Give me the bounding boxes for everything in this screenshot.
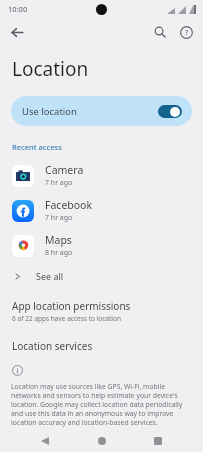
staticText: Location (12, 56, 89, 82)
staticText: Location may use sources like GPS, Wi-Fi… (11, 382, 192, 427)
button[interactable]: App location permissions (0, 297, 203, 325)
staticText: Recent access (12, 142, 62, 152)
staticText: App location permissions (12, 299, 131, 313)
staticText: 7 hr ago (45, 213, 73, 223)
button[interactable]: Maps (0, 228, 203, 263)
staticText: Camera (45, 163, 84, 177)
button[interactable]: Search (147, 19, 173, 45)
staticText: ? (185, 28, 189, 38)
button[interactable]: Back (4, 19, 30, 45)
staticText: 8 hr ago (45, 248, 73, 258)
staticText: Maps (45, 233, 72, 247)
button[interactable]: Use location (11, 96, 192, 126)
button[interactable]: Recent apps (146, 430, 170, 452)
staticText: Use location (22, 105, 77, 118)
staticText: See all (36, 270, 64, 282)
button[interactable]: Camera (0, 158, 203, 193)
button[interactable]: Back (33, 430, 57, 452)
staticText: Facebook (45, 198, 93, 212)
button[interactable]: Home (90, 430, 114, 452)
button[interactable]: See all (0, 265, 203, 287)
button[interactable]: Location services (0, 337, 203, 355)
staticText: 10:00 (8, 4, 28, 14)
staticText: 6 of 22 apps have access to location (12, 314, 121, 323)
staticText: 7 hr ago (45, 178, 73, 188)
button[interactable]: Facebook (0, 193, 203, 228)
staticText: Location services (12, 339, 93, 353)
button[interactable]: Help (173, 19, 199, 45)
